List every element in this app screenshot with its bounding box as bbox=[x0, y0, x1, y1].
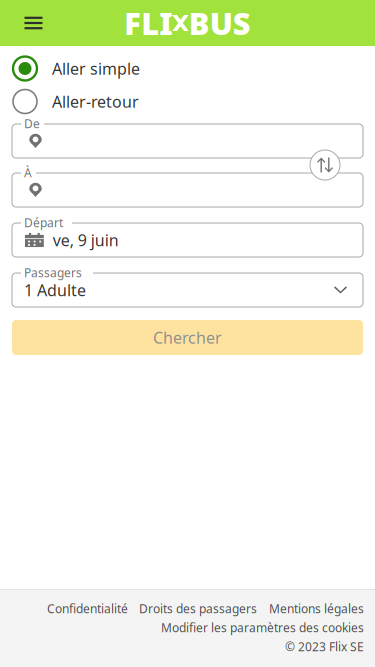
staticText: Chercher bbox=[153, 327, 222, 348]
staticText: Aller-retour bbox=[52, 91, 139, 112]
staticText: Passagers bbox=[24, 264, 82, 280]
staticText: Droits des passagers bbox=[139, 600, 257, 616]
button[interactable]: Confidentialité bbox=[47, 600, 128, 616]
staticText: Départ bbox=[24, 214, 63, 230]
staticText: Confidentialité bbox=[47, 600, 128, 616]
button[interactable]: Aller simple bbox=[0, 52, 375, 85]
staticText: Modifier les paramètres des cookies bbox=[161, 619, 364, 635]
staticText: Mentions légales bbox=[269, 600, 364, 616]
button[interactable]: De bbox=[12, 118, 363, 158]
staticText: Aller simple bbox=[52, 58, 140, 79]
button[interactable]: Modifier les paramètres des cookies bbox=[161, 619, 364, 635]
button[interactable]: Droits des passagers bbox=[139, 600, 257, 616]
staticText: BUS bbox=[189, 3, 251, 43]
button[interactable]: 1 Adulte bbox=[12, 267, 363, 307]
button[interactable]: Inverser le départ et la destination bbox=[309, 149, 341, 181]
button[interactable]: Mentions légales bbox=[269, 600, 364, 616]
button[interactable]: À bbox=[12, 167, 363, 207]
button[interactable]: Menu bbox=[0, 0, 67, 46]
staticText: De bbox=[24, 115, 40, 131]
button[interactable]: Aller-retour bbox=[0, 85, 375, 118]
button[interactable]: FlixBus bbox=[124, 0, 251, 46]
button[interactable]: Chercher bbox=[12, 320, 363, 355]
staticText: 1 Adulte bbox=[24, 279, 86, 301]
staticText: ve, 9 juin bbox=[53, 229, 119, 251]
staticText: FLI bbox=[124, 3, 172, 43]
button[interactable]: ve, 9 juin bbox=[12, 217, 363, 257]
staticText: À bbox=[24, 164, 32, 180]
staticText: © 2023 Flix SE bbox=[285, 638, 364, 654]
